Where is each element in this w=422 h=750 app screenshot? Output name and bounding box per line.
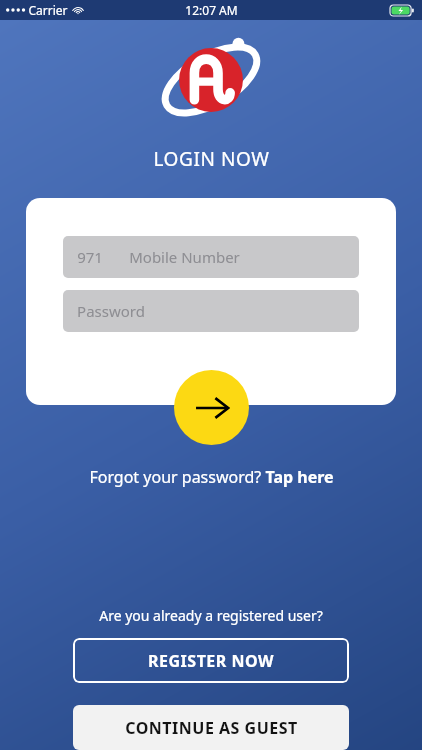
- staticText: Carrier: [28, 2, 68, 18]
- button[interactable]: Sign in: [174, 370, 249, 445]
- button[interactable]: REGISTER NOW: [73, 638, 349, 683]
- staticText: Forgot your password? Tap here: [89, 466, 334, 488]
- staticText: Password: [77, 301, 145, 321]
- staticText: CONTINUE AS GUEST: [125, 717, 298, 739]
- button[interactable]: 971: [63, 236, 359, 278]
- button[interactable]: Forgot your password? Tap here: [71, 460, 352, 494]
- staticText: Mobile Number: [129, 247, 240, 267]
- staticText: LOGIN NOW: [153, 146, 270, 172]
- staticText: 12:07 AM: [185, 2, 238, 18]
- button[interactable]: Password: [63, 290, 359, 332]
- staticText: Are you already a registered user?: [99, 606, 323, 625]
- button[interactable]: CONTINUE AS GUEST: [73, 705, 349, 750]
- staticText: 971: [77, 247, 103, 267]
- staticText: REGISTER NOW: [148, 650, 274, 672]
